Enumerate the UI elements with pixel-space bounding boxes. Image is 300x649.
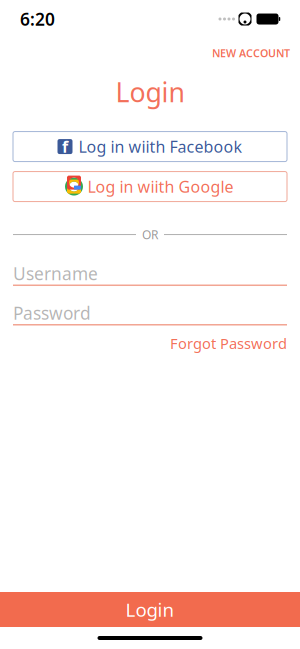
- button[interactable]: Forgot Password: [170, 330, 287, 356]
- staticText: Username: [13, 262, 98, 285]
- staticText: Login: [125, 597, 174, 622]
- staticText: Log in wiith Google: [87, 176, 233, 197]
- staticText: f: [62, 136, 68, 157]
- button[interactable]: Login: [0, 592, 300, 627]
- staticText: OR: [142, 227, 158, 242]
- staticText: Log in wiith Facebook: [78, 136, 242, 157]
- button[interactable]: NEW ACCOUNT: [208, 42, 294, 64]
- staticText: Login: [115, 74, 184, 110]
- staticText: NEW ACCOUNT: [212, 46, 290, 60]
- button[interactable]: f: [13, 132, 287, 162]
- staticText: 6:20: [20, 7, 55, 30]
- staticText: Forgot Password: [170, 333, 287, 353]
- button[interactable]: Log in wiith Google: [13, 172, 287, 202]
- staticText: Password: [13, 301, 91, 324]
